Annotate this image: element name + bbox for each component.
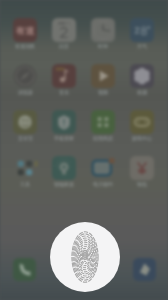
staticText: 有道词典 <box>15 43 35 49</box>
button[interactable]: 音乐 <box>46 64 82 95</box>
button[interactable]: 浏览器 <box>133 258 156 281</box>
button[interactable]: 电话 <box>13 258 36 281</box>
staticText: 天气 <box>137 43 147 49</box>
staticText: 手机管家 <box>54 135 74 141</box>
button[interactable]: 智能家居 <box>46 156 82 187</box>
button[interactable]: 指纹解锁 <box>50 222 120 292</box>
staticText: 音乐 <box>59 89 69 95</box>
staticText: 时钟 <box>98 43 108 49</box>
button[interactable]: 天气 <box>124 18 160 49</box>
button[interactable]: 浏览器 <box>7 64 43 95</box>
staticText: 游戏中心 <box>132 135 152 141</box>
button[interactable]: 支付宝 <box>7 110 43 141</box>
button[interactable]: 相册 <box>124 64 160 95</box>
staticText: 支付宝 <box>18 135 33 141</box>
staticText: 钱包 <box>137 181 147 187</box>
button[interactable]: 手机管家 <box>46 110 82 141</box>
staticText: 有道 <box>16 25 34 36</box>
button[interactable]: 时钟 <box>85 18 121 49</box>
staticText: 工具 <box>20 181 30 187</box>
staticText: 相册 <box>137 89 147 95</box>
staticText: 电子邮件 <box>93 181 113 187</box>
button[interactable]: 电子邮件 <box>85 156 121 187</box>
staticText: 应用商店 <box>93 135 113 141</box>
staticText: 智能家居 <box>54 181 74 187</box>
staticText: 浏览器 <box>18 89 33 95</box>
button[interactable]: 应用商店 <box>85 110 121 141</box>
button[interactable]: 日历 <box>46 18 82 49</box>
button[interactable]: 钱包 <box>124 156 160 187</box>
staticText: 视频 <box>98 89 108 95</box>
button[interactable]: 游戏中心 <box>124 110 160 141</box>
button[interactable]: 工具 <box>7 156 43 187</box>
button[interactable]: 有道 <box>7 18 43 49</box>
staticText: 日历 <box>59 43 69 49</box>
button[interactable]: 视频 <box>85 64 121 95</box>
